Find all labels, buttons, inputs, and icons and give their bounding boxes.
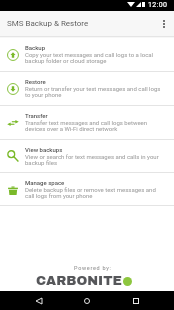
staticText: Powered by:: [74, 265, 112, 271]
button[interactable]: Back: [27, 291, 50, 310]
staticText: Copy your text messages and call logs to…: [25, 51, 164, 65]
button[interactable]: Backup: [0, 38, 174, 71]
button[interactable]: Transfer: [0, 106, 174, 139]
button[interactable]: Manage space: [0, 173, 174, 205]
staticText: CARBONITE: [36, 274, 122, 288]
staticText: Return or transfer your text messages an…: [25, 85, 164, 99]
button[interactable]: More options: [154, 14, 174, 34]
staticText: Transfer text messages and call logs bet…: [25, 119, 164, 133]
staticText: Transfer: [25, 112, 48, 119]
staticText: Backup: [25, 44, 46, 51]
staticText: SMS Backup & Restore: [7, 19, 89, 28]
staticText: Manage space: [25, 179, 65, 186]
staticText: View or search for text messages and cal…: [25, 153, 164, 167]
staticText: 12:00: [148, 1, 168, 9]
button[interactable]: Home: [75, 291, 98, 310]
button[interactable]: Restore: [0, 72, 174, 105]
staticText: View backups: [25, 146, 63, 153]
staticText: Delete backup files or remove text messa…: [25, 186, 164, 200]
button[interactable]: View backups: [0, 140, 174, 172]
staticText: Restore: [25, 78, 46, 85]
button[interactable]: Recents: [124, 291, 147, 310]
